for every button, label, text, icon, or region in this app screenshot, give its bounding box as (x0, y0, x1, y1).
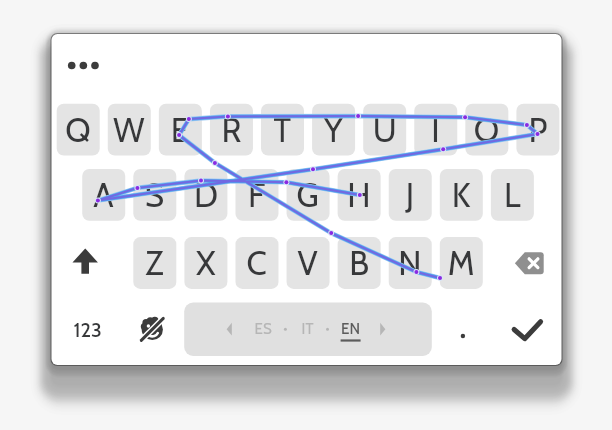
button[interactable]: H (338, 169, 381, 221)
button[interactable]: C (235, 237, 278, 289)
button[interactable]: U (363, 104, 406, 156)
button[interactable]: T (261, 104, 304, 156)
button[interactable]: Y (312, 104, 355, 156)
button[interactable]: Switch to numbers (63, 303, 123, 356)
button[interactable]: D (184, 169, 227, 221)
button[interactable]: X (184, 237, 227, 289)
button[interactable]: B (338, 237, 381, 289)
button[interactable]: Period (440, 303, 486, 356)
button[interactable]: V (287, 237, 330, 289)
button[interactable]: Emoji off (126, 303, 180, 356)
button[interactable]: L (491, 169, 534, 221)
button[interactable]: Enter (502, 303, 556, 356)
button[interactable]: Q (57, 104, 100, 156)
button[interactable]: O (465, 104, 508, 156)
button[interactable]: G (287, 169, 330, 221)
button[interactable]: Z (133, 237, 176, 289)
button[interactable]: N (389, 237, 432, 289)
button[interactable]: W (108, 104, 151, 156)
button[interactable]: Space, language EN (184, 303, 432, 356)
button[interactable]: A (82, 169, 125, 221)
button[interactable]: More options (62, 48, 106, 82)
button[interactable]: F (235, 169, 278, 221)
button[interactable]: Backspace (508, 237, 565, 289)
button[interactable]: M (440, 237, 483, 289)
button[interactable]: I (414, 104, 457, 156)
button[interactable]: P (516, 104, 559, 156)
button[interactable]: K (440, 169, 483, 221)
button[interactable]: S (133, 169, 176, 221)
button[interactable]: J (389, 169, 432, 221)
button[interactable]: R (210, 104, 253, 156)
button[interactable]: E (159, 104, 202, 156)
button[interactable]: Shift (57, 237, 114, 289)
